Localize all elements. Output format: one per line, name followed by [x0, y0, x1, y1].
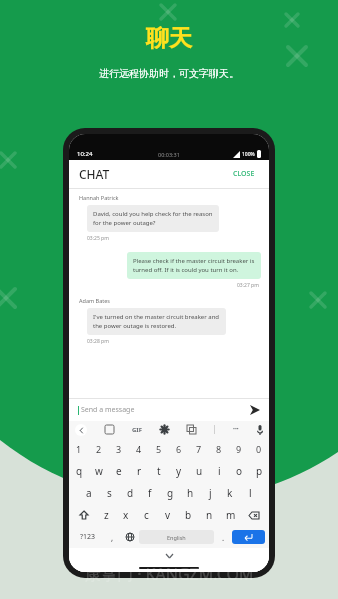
- staticText: 8: [216, 443, 222, 455]
- staticText: m: [226, 508, 236, 522]
- staticText: d: [127, 486, 134, 500]
- staticText: Send a message: [81, 405, 135, 415]
- button[interactable]: English: [139, 530, 214, 544]
- staticText: j: [209, 486, 212, 500]
- button[interactable]: Language: [121, 526, 139, 548]
- button[interactable]: d: [120, 482, 140, 504]
- staticText: 100%: [242, 151, 255, 158]
- button[interactable]: r: [129, 460, 149, 482]
- staticText: 03:25 pm: [87, 235, 109, 242]
- button[interactable]: z: [96, 504, 116, 526]
- staticText: 9: [236, 443, 242, 455]
- button[interactable]: g: [160, 482, 180, 504]
- button[interactable]: s: [99, 482, 120, 504]
- staticText: 6: [176, 443, 182, 455]
- button[interactable]: Shift: [72, 504, 96, 526]
- button[interactable]: v: [157, 504, 178, 526]
- button[interactable]: 4: [129, 438, 149, 460]
- button[interactable]: 6: [169, 438, 189, 460]
- button[interactable]: k: [220, 482, 240, 504]
- button[interactable]: Backspace: [241, 504, 266, 526]
- button[interactable]: m: [220, 504, 241, 526]
- button[interactable]: Back: [75, 424, 87, 436]
- staticText: David, could you help check for the reas…: [93, 210, 213, 227]
- staticText: ,: [111, 532, 114, 543]
- button[interactable]: CLOSE: [229, 165, 259, 183]
- button[interactable]: q: [69, 460, 89, 482]
- staticText: u: [196, 464, 203, 478]
- button[interactable]: 9: [229, 438, 249, 460]
- button[interactable]: j: [200, 482, 220, 504]
- button[interactable]: Enter: [232, 530, 265, 544]
- staticText: z: [104, 508, 109, 522]
- staticText: 聊天: [146, 24, 192, 53]
- button[interactable]: 3: [109, 438, 129, 460]
- staticText: English: [167, 534, 186, 541]
- button[interactable]: l: [240, 482, 260, 504]
- staticText: 00:03:31: [158, 151, 180, 158]
- button[interactable]: b: [178, 504, 199, 526]
- staticText: o: [236, 464, 243, 478]
- staticText: g: [167, 486, 174, 500]
- button[interactable]: 5: [149, 438, 169, 460]
- button[interactable]: y: [169, 460, 189, 482]
- staticText: 7: [196, 443, 202, 455]
- staticText: 康掌门 · KANGZM.COM: [85, 563, 254, 585]
- staticText: r: [137, 464, 142, 478]
- staticText: a: [86, 486, 92, 500]
- button[interactable]: Translate: [187, 425, 196, 434]
- staticText: l: [249, 486, 252, 500]
- button[interactable]: GIF: [132, 426, 142, 434]
- button[interactable]: .: [214, 526, 232, 548]
- button[interactable]: t: [149, 460, 169, 482]
- button[interactable]: n: [199, 504, 220, 526]
- button[interactable]: 2: [89, 438, 109, 460]
- staticText: t: [157, 464, 161, 478]
- button[interactable]: ,: [103, 526, 121, 548]
- staticText: f: [148, 486, 152, 500]
- button[interactable]: h: [180, 482, 200, 504]
- staticText: I've turned on the master circuit breake…: [93, 313, 220, 330]
- button[interactable]: w: [89, 460, 109, 482]
- button[interactable]: 8: [209, 438, 229, 460]
- button[interactable]: i: [209, 460, 229, 482]
- staticText: Adam Bates: [79, 297, 110, 304]
- button[interactable]: x: [116, 504, 136, 526]
- staticText: k: [227, 486, 233, 500]
- button[interactable]: 7: [189, 438, 209, 460]
- staticText: 4: [136, 443, 142, 455]
- button[interactable]: a: [78, 482, 99, 504]
- button[interactable]: f: [140, 482, 160, 504]
- staticText: 0: [256, 443, 262, 455]
- staticText: 10:24: [77, 150, 93, 158]
- button[interactable]: c: [136, 504, 157, 526]
- staticText: x: [123, 508, 129, 522]
- button[interactable]: •••: [233, 426, 239, 433]
- button[interactable]: Send a message: [78, 399, 260, 421]
- staticText: 03:27 pm: [237, 282, 259, 289]
- staticText: i: [218, 464, 221, 478]
- staticText: e: [116, 464, 122, 478]
- button[interactable]: o: [229, 460, 249, 482]
- staticText: w: [95, 464, 103, 478]
- button[interactable]: Voice input: [257, 425, 263, 435]
- staticText: s: [107, 486, 112, 500]
- staticText: ?123: [80, 532, 96, 542]
- staticText: 5: [156, 443, 162, 455]
- button[interactable]: u: [189, 460, 209, 482]
- button[interactable]: ?123: [73, 526, 103, 548]
- button[interactable]: p: [249, 460, 269, 482]
- button[interactable]: Settings: [160, 425, 169, 434]
- staticText: h: [187, 486, 194, 500]
- button[interactable]: 0: [249, 438, 269, 460]
- other: Send: [250, 405, 260, 415]
- button[interactable]: e: [109, 460, 129, 482]
- staticText: 3: [116, 443, 122, 455]
- staticText: CLOSE: [233, 169, 255, 179]
- staticText: 2: [96, 443, 102, 455]
- staticText: b: [185, 508, 192, 522]
- staticText: y: [176, 464, 182, 478]
- staticText: 1: [76, 443, 82, 455]
- button[interactable]: 1: [69, 438, 89, 460]
- button[interactable]: Stickers: [105, 425, 114, 434]
